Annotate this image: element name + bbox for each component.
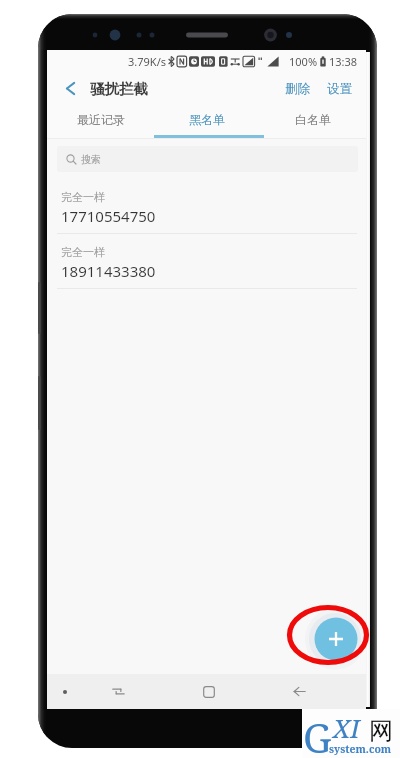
staticText: 白名单 [295, 112, 331, 127]
staticText: 17710554750 [61, 206, 156, 226]
button[interactable]: Add [305, 608, 367, 670]
button[interactable]: 完全一样 [47, 179, 366, 234]
button[interactable]: Recents [100, 674, 136, 709]
staticText: 18911433380 [61, 261, 156, 281]
staticText: 完全一样 [61, 190, 105, 204]
staticText: 黑名单 [189, 112, 225, 127]
button[interactable]: Back [55, 72, 86, 105]
button[interactable]: 搜索 [57, 146, 358, 172]
staticText: 13:38 [329, 54, 358, 69]
staticText: 网 [369, 716, 393, 746]
staticText: 最近记录 [77, 112, 125, 127]
staticText: XI [333, 710, 360, 745]
staticText: 删除 [285, 81, 310, 97]
button[interactable]: 完全一样 [47, 234, 366, 289]
button[interactable]: Notification [52, 674, 78, 709]
staticText: G [303, 710, 332, 758]
staticText: 3.79K/s [128, 54, 166, 69]
button[interactable]: 最近记录 [47, 105, 154, 138]
button[interactable]: 黑名单 [154, 105, 260, 138]
staticText: 设置 [327, 81, 352, 97]
button[interactable]: 设置 [321, 72, 357, 105]
staticText: 搜索 [81, 153, 101, 166]
button[interactable]: Back [281, 674, 317, 709]
staticText: 100% [289, 54, 318, 69]
button[interactable]: Home [191, 674, 227, 709]
staticText: system.com [329, 742, 392, 756]
staticText: 骚扰拦截 [90, 80, 148, 98]
staticText: 完全一样 [61, 245, 105, 259]
button[interactable]: 删除 [279, 72, 315, 105]
button[interactable]: 白名单 [260, 105, 366, 138]
